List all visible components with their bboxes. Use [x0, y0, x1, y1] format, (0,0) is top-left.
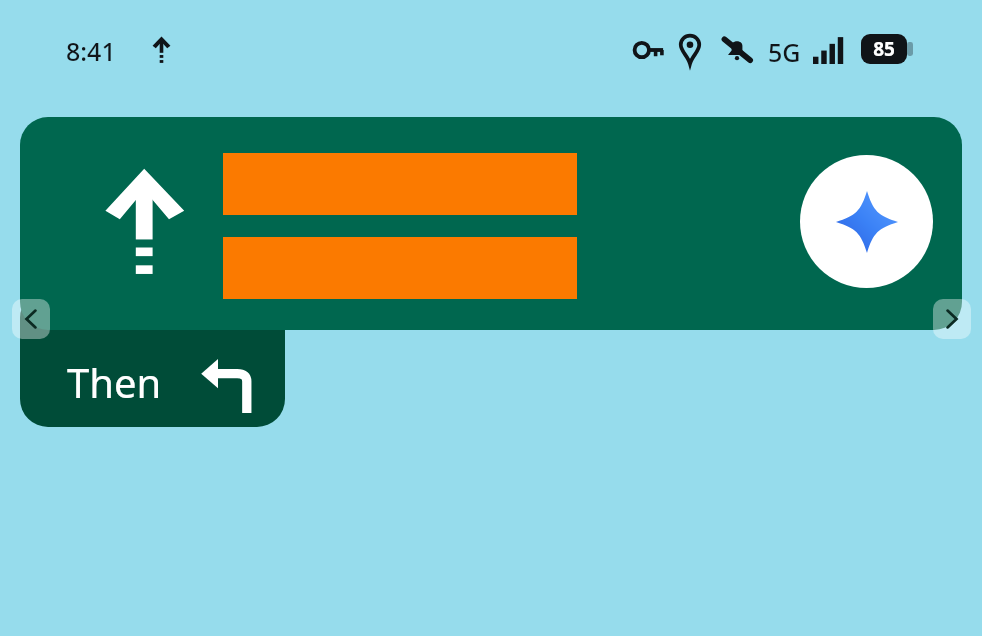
- button[interactable]: Ask Gemini: [800, 155, 933, 288]
- other: Signal strength: [813, 36, 845, 64]
- button[interactable]: Previous: [12, 299, 50, 339]
- button[interactable]: Then: [20, 290, 285, 427]
- other: Location in use: [679, 34, 701, 64]
- staticText: Then: [67, 355, 162, 409]
- button[interactable]: Continue straight: [20, 117, 962, 330]
- staticText: 8:41: [66, 34, 116, 68]
- staticText: 85: [873, 36, 895, 62]
- other: Notifications silenced: [722, 36, 752, 63]
- button[interactable]: Next: [933, 299, 971, 339]
- other: Continue straight: [105, 167, 185, 282]
- staticText: 5G: [768, 35, 801, 69]
- other: VPN active: [634, 38, 664, 62]
